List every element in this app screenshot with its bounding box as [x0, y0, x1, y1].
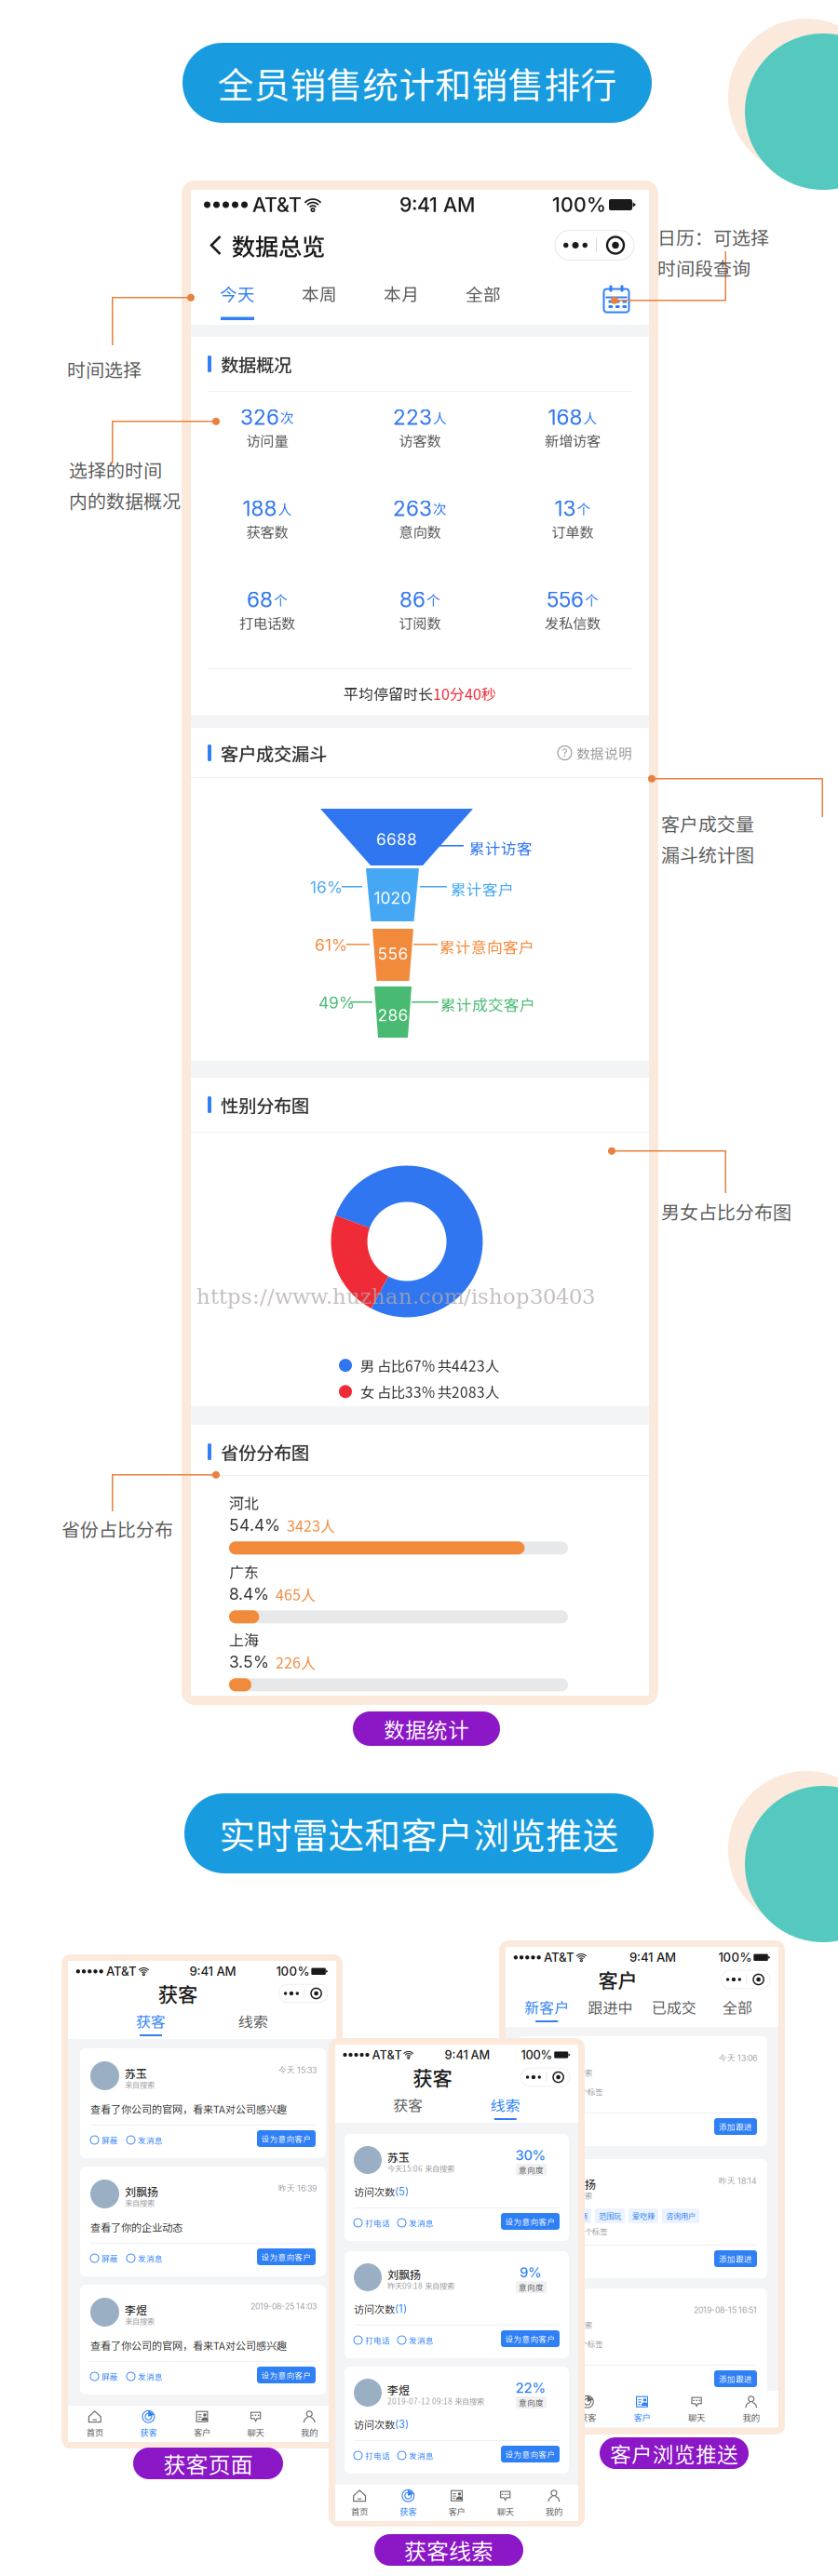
staticText: 访问量	[246, 430, 288, 451]
button[interactable]: 关闭	[747, 1970, 770, 1989]
button[interactable]: 我的	[530, 2485, 578, 2521]
staticText: 刘飘扬	[562, 2176, 596, 2192]
staticText: 客户浏览推送	[610, 2438, 738, 2468]
button[interactable]: 设为意向客户	[501, 2446, 560, 2462]
staticText: ?	[562, 746, 568, 760]
button[interactable]: 获客	[122, 2406, 175, 2442]
staticText: 556	[547, 587, 584, 612]
button[interactable]: 聊天	[669, 2391, 724, 2427]
button[interactable]: 跟进中	[578, 1993, 642, 2025]
button[interactable]: 添加跟进	[714, 2118, 757, 2135]
button[interactable]: 打电话	[354, 2335, 390, 2345]
button[interactable]: 聊天	[229, 2406, 282, 2442]
button[interactable]: 本周	[278, 270, 360, 324]
staticText: 昨天 18:14	[719, 2176, 757, 2186]
button[interactable]: 全部	[706, 1993, 769, 2025]
button[interactable]: 发消息	[127, 2253, 163, 2263]
staticText: 性别分布图	[221, 1092, 309, 1118]
button[interactable]: 打电话	[354, 2218, 390, 2228]
button[interactable]: 屏蔽	[90, 2253, 118, 2263]
button[interactable]: 设为意向客户	[501, 2213, 560, 2230]
staticText: 日历：可选择	[657, 223, 769, 250]
staticText: (1)	[395, 2303, 407, 2315]
button[interactable]: 关闭	[547, 2068, 570, 2086]
button[interactable]: 客户	[175, 2406, 229, 2442]
staticText: 今天15:06 来自搜索	[387, 2163, 454, 2174]
button[interactable]: 客户	[615, 2391, 669, 2427]
button[interactable]: 获客页面	[133, 2448, 283, 2479]
staticText: 发消息	[539, 2374, 564, 2386]
button[interactable]: 我的	[724, 2391, 778, 2427]
staticText: 昨天09:18 来自搜索	[387, 2280, 454, 2291]
button[interactable]: 获客	[359, 2091, 457, 2123]
button[interactable]: 屏蔽	[90, 2135, 118, 2145]
button[interactable]: 获客	[384, 2485, 432, 2521]
button[interactable]: 线索	[457, 2091, 554, 2123]
button[interactable]: 全部	[442, 270, 524, 324]
staticText: 226人	[276, 1651, 316, 1673]
button[interactable]: 客户浏览推送	[600, 2437, 749, 2469]
staticText: 实时雷达和客户浏览推送	[219, 1807, 619, 1859]
button[interactable]: 获客线索	[374, 2534, 523, 2566]
staticText: 打电话	[365, 2334, 390, 2346]
button[interactable]: 客户	[432, 2485, 481, 2521]
button[interactable]: 今天	[196, 270, 278, 324]
button[interactable]: 首页	[506, 2391, 560, 2427]
button[interactable]: 更多	[521, 2068, 546, 2086]
staticText: 刘飘扬	[387, 2266, 421, 2282]
staticText: (5)	[395, 2185, 409, 2198]
button[interactable]: 全员销售统计和销售排行	[182, 43, 652, 123]
staticText: 次	[280, 407, 294, 427]
button[interactable]: 添加跟进	[714, 2250, 757, 2267]
staticText: 68	[247, 587, 273, 612]
button[interactable]: 添加跟进	[714, 2370, 757, 2387]
button[interactable]: 线索	[202, 2007, 304, 2039]
button[interactable]: 更多	[721, 1970, 746, 1989]
staticText: 设为意向客户	[505, 2448, 555, 2460]
button[interactable]: 设为意向客户	[501, 2330, 560, 2347]
staticText: 来自搜索	[562, 2190, 592, 2201]
button[interactable]: 聊天	[481, 2485, 530, 2521]
button[interactable]: 发消息	[528, 2375, 564, 2385]
button[interactable]: 日历	[591, 270, 642, 324]
button[interactable]: 我的	[282, 2406, 336, 2442]
button[interactable]: 发消息	[398, 2450, 434, 2461]
staticText: 新增访客	[545, 430, 601, 451]
button[interactable]: 实时雷达和客户浏览推送	[184, 1793, 654, 1873]
button[interactable]: 数据统计	[353, 1711, 500, 1746]
staticText: 来自搜索	[125, 2315, 155, 2327]
button[interactable]: 发消息	[127, 2135, 163, 2145]
button[interactable]: ?	[558, 743, 632, 763]
button[interactable]: 获客	[100, 2007, 202, 2039]
button[interactable]: 更多	[555, 230, 596, 260]
button[interactable]: 发消息	[398, 2218, 434, 2228]
button[interactable]: 关闭	[305, 1984, 328, 2003]
button[interactable]: 获客	[560, 2391, 615, 2427]
staticText: 22%	[515, 2380, 546, 2396]
button[interactable]: 已成交	[642, 1993, 706, 2025]
staticText: 数据总览	[232, 228, 325, 262]
button[interactable]: 打电话	[354, 2450, 390, 2461]
button[interactable]: 设为意向客户	[257, 2367, 316, 2383]
button[interactable]: 更多	[279, 1984, 304, 2003]
button[interactable]: 返回	[200, 224, 232, 267]
button[interactable]: 本月	[360, 270, 442, 324]
button[interactable]: 首页	[335, 2485, 384, 2521]
staticText: 上海	[229, 1629, 259, 1650]
button[interactable]: 关闭	[597, 230, 634, 260]
staticText: 发消息	[539, 2122, 564, 2134]
button[interactable]: 屏蔽	[90, 2371, 118, 2381]
button[interactable]: 发消息	[398, 2335, 434, 2345]
button[interactable]: 新客户	[515, 1993, 578, 2025]
staticText: 数据统计	[384, 1713, 469, 1744]
staticText: 326	[240, 404, 279, 430]
button[interactable]: 设为意向客户	[257, 2130, 316, 2147]
button[interactable]: 设为意向客户	[257, 2248, 316, 2265]
staticText: 本周	[302, 281, 337, 306]
staticText: 来自搜索	[125, 2079, 155, 2090]
button[interactable]: 发消息	[127, 2371, 163, 2381]
button[interactable]: 首页	[68, 2406, 122, 2442]
